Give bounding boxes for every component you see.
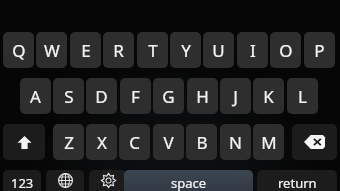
staticText: space (171, 174, 207, 191)
staticText: V (163, 131, 174, 154)
staticText: B (196, 131, 208, 154)
button[interactable]: L (287, 78, 318, 114)
staticText: Y (181, 39, 191, 62)
staticText: S (64, 85, 74, 108)
staticText: return (278, 174, 317, 191)
button[interactable]: S (53, 78, 84, 114)
button[interactable]: R (103, 32, 134, 68)
staticText: J (233, 85, 238, 108)
staticText: U (212, 39, 225, 62)
button[interactable]: G (153, 78, 184, 114)
button[interactable]: I (237, 32, 268, 68)
button[interactable]: N (220, 124, 251, 160)
button[interactable]: Y (170, 32, 201, 68)
staticText: Z (64, 131, 74, 154)
staticText: I (250, 39, 256, 62)
staticText: A (30, 85, 41, 108)
staticText: H (196, 85, 209, 108)
button[interactable]: U (203, 32, 234, 68)
staticText: M (261, 131, 277, 154)
button[interactable]: T (137, 32, 168, 68)
staticText: K (263, 85, 274, 108)
staticText: L (298, 85, 307, 108)
staticText: C (129, 131, 140, 154)
staticText: X (97, 131, 107, 154)
staticText: 123 (11, 174, 34, 191)
button[interactable]: H (187, 78, 218, 114)
staticText: P (314, 39, 325, 62)
button[interactable]: Change keyboard (46, 170, 84, 191)
button[interactable]: C (119, 124, 150, 160)
button[interactable]: V (153, 124, 184, 160)
button[interactable]: E (70, 32, 101, 68)
staticText: D (95, 85, 108, 108)
button[interactable]: Shift (3, 124, 45, 160)
button[interactable]: O (270, 32, 301, 68)
staticText: Q (12, 39, 26, 62)
staticText: R (113, 39, 124, 62)
button[interactable]: P (304, 32, 335, 68)
button[interactable]: F (120, 78, 151, 114)
staticText: F (131, 85, 140, 108)
staticText: G (162, 85, 175, 108)
staticText: T (148, 39, 158, 62)
button[interactable]: A (20, 78, 51, 114)
button[interactable]: X (86, 124, 117, 160)
button[interactable]: Delete (292, 124, 337, 160)
button[interactable]: Settings (89, 170, 127, 191)
button[interactable]: Q (3, 32, 34, 68)
button[interactable]: space (124, 170, 253, 191)
staticText: E (81, 39, 91, 62)
button[interactable]: Z (53, 124, 84, 160)
button[interactable]: D (86, 78, 117, 114)
button[interactable]: B (186, 124, 217, 160)
button[interactable]: M (253, 124, 284, 160)
button[interactable]: J (220, 78, 251, 114)
button[interactable]: W (36, 32, 67, 68)
button[interactable]: return (257, 170, 337, 191)
staticText: W (44, 39, 60, 62)
button[interactable]: K (253, 78, 284, 114)
staticText: N (229, 131, 242, 154)
staticText: O (279, 39, 293, 62)
button[interactable]: 123 (3, 170, 41, 191)
